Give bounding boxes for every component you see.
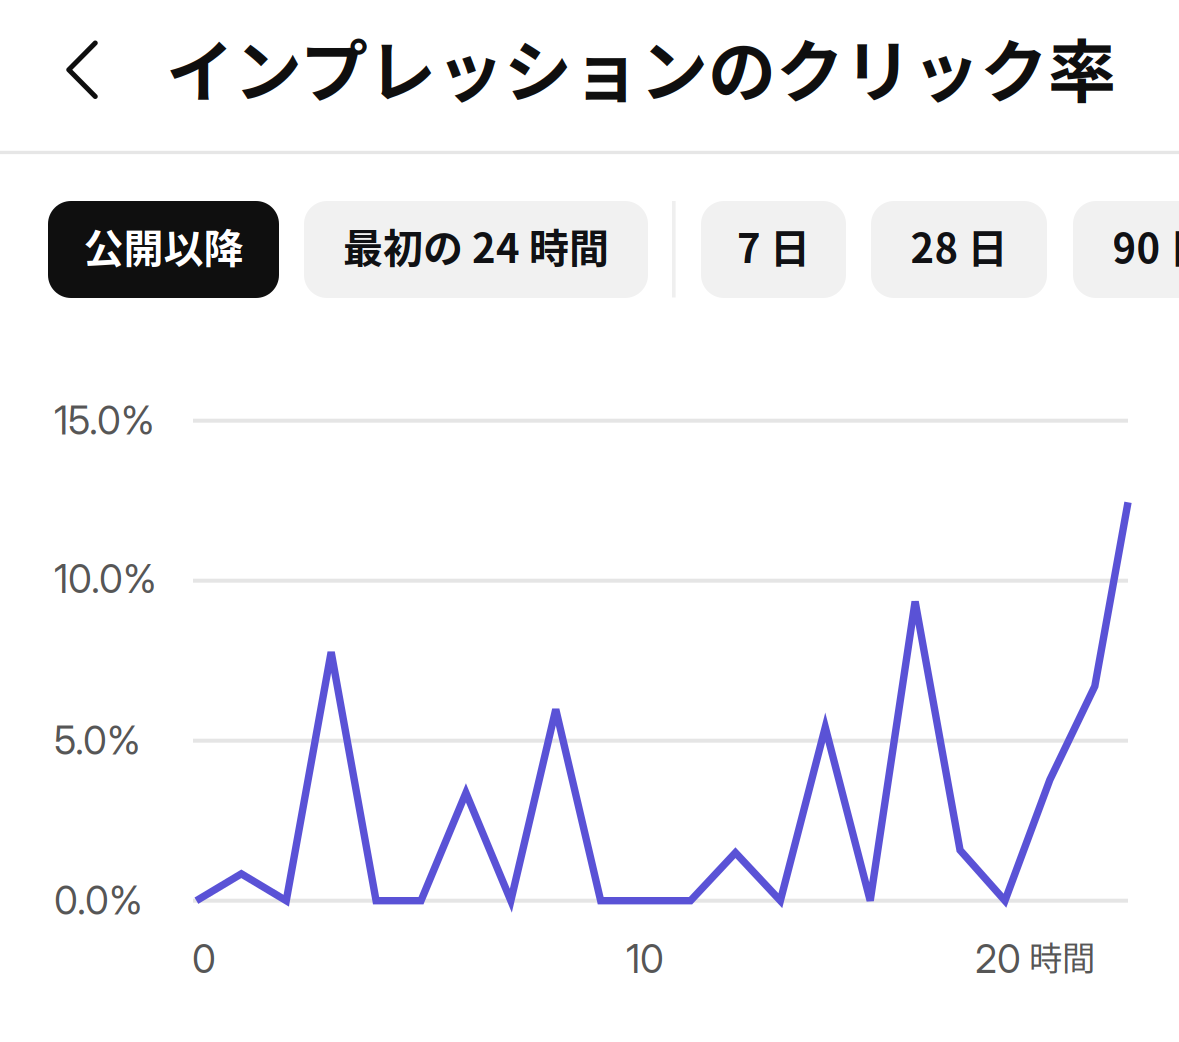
staticText: 15.0% [54, 397, 155, 444]
staticText: 0.0% [54, 877, 143, 924]
staticText: 5.0% [54, 717, 141, 764]
staticText: 90 日 [1112, 216, 1179, 274]
staticText: 最初の 24 時間 [343, 216, 609, 274]
staticText: 28 日 [910, 216, 1007, 274]
button[interactable]: Back [27, 28, 137, 112]
button[interactable]: 最初の 24 時間 [304, 201, 648, 298]
staticText: 10 [626, 936, 664, 982]
staticText: 10.0% [54, 556, 157, 602]
button[interactable]: 90 日 [1073, 201, 1179, 298]
button[interactable]: 7 日 [701, 201, 846, 298]
staticText: 20 [975, 936, 1021, 982]
staticText: インプレッションのクリック率 [166, 18, 1116, 116]
staticText: 公開以降 [83, 216, 243, 274]
staticText: 0 [192, 936, 216, 982]
button[interactable]: 28 日 [871, 201, 1047, 298]
staticText: 7 日 [737, 216, 810, 274]
button[interactable]: 公開以降 [48, 201, 279, 298]
staticText: 時間 [1029, 932, 1095, 980]
